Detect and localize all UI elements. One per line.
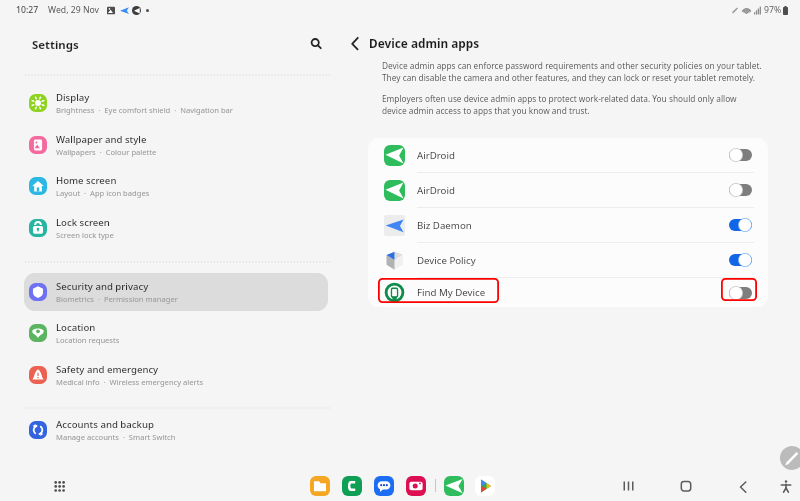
button[interactable]: Wallpaper and style bbox=[24, 126, 328, 164]
staticText: Location requests bbox=[56, 335, 120, 345]
staticText: Lock screen bbox=[56, 216, 110, 229]
staticText: Layout · App icon badges bbox=[56, 188, 150, 198]
button[interactable]: Back bbox=[346, 32, 368, 54]
button[interactable]: play bbox=[475, 476, 495, 496]
button[interactable]: Location bbox=[24, 314, 328, 352]
staticText: Screen lock type bbox=[56, 230, 114, 240]
button[interactable]: Recents bbox=[621, 478, 637, 494]
button[interactable]: Accounts and backup bbox=[24, 411, 328, 449]
button[interactable]: AirDroid bbox=[368, 173, 768, 207]
button[interactable]: Apps bbox=[50, 475, 70, 495]
staticText: Home screen bbox=[56, 174, 117, 187]
button[interactable]: msg bbox=[374, 476, 394, 496]
staticText: Location bbox=[56, 321, 96, 334]
staticText: AirDroid bbox=[417, 149, 455, 162]
staticText: Display bbox=[56, 91, 90, 104]
button[interactable]: Accessibility bbox=[778, 478, 794, 494]
staticText: Settings bbox=[32, 37, 79, 53]
button[interactable]: Security and privacy bbox=[24, 273, 328, 311]
staticText: Biometrics · Permission manager bbox=[56, 294, 178, 304]
button[interactable]: Safety and emergency bbox=[24, 356, 328, 394]
button[interactable]: Device Policy bbox=[368, 243, 768, 277]
staticText: Wallpaper and style bbox=[56, 133, 147, 146]
staticText: Safety and emergency bbox=[56, 363, 159, 376]
button[interactable]: Edit bbox=[780, 446, 800, 470]
button[interactable]: files bbox=[310, 476, 330, 496]
staticText: Find My Device bbox=[417, 286, 486, 299]
button[interactable]: Toggle bbox=[729, 183, 752, 197]
staticText: 97% bbox=[764, 4, 782, 16]
staticText: Wallpapers · Colour palette bbox=[56, 147, 157, 157]
button[interactable]: Biz Daemon bbox=[368, 208, 768, 242]
button[interactable]: Toggle bbox=[729, 286, 752, 300]
button[interactable]: Home bbox=[678, 478, 694, 494]
button[interactable]: Back bbox=[735, 478, 751, 494]
button[interactable]: Toggle bbox=[729, 148, 752, 162]
button[interactable]: Home screen bbox=[24, 167, 328, 205]
button[interactable]: cam bbox=[406, 476, 426, 496]
staticText: Device Policy bbox=[417, 254, 476, 267]
staticText: Device admin apps bbox=[369, 35, 480, 51]
button[interactable]: Lock screen bbox=[24, 209, 328, 247]
button[interactable]: airdroid bbox=[444, 476, 464, 496]
button[interactable]: Find My Device bbox=[368, 278, 768, 307]
staticText: 10:27 bbox=[16, 4, 39, 16]
staticText: Wed, 29 Nov bbox=[48, 4, 100, 16]
button[interactable]: Toggle bbox=[729, 253, 752, 267]
staticText: Biz Daemon bbox=[417, 219, 472, 232]
staticText: Medical info · Wireless emergency alerts bbox=[56, 377, 204, 387]
staticText: Manage accounts · Smart Switch bbox=[56, 432, 176, 442]
button[interactable]: AirDroid bbox=[368, 138, 768, 172]
staticText: Device admin apps can enforce password r… bbox=[382, 60, 762, 83]
staticText: Brightness · Eye comfort shield · Naviga… bbox=[56, 105, 234, 115]
button[interactable]: Display bbox=[24, 84, 328, 122]
button[interactable]: phone bbox=[342, 476, 362, 496]
staticText: AirDroid bbox=[417, 184, 455, 197]
button[interactable]: Search bbox=[303, 31, 327, 55]
staticText: Employers often use device admin apps to… bbox=[382, 93, 737, 116]
staticText: Accounts and backup bbox=[56, 418, 154, 431]
staticText: Security and privacy bbox=[56, 280, 149, 293]
button[interactable]: Toggle bbox=[729, 218, 752, 232]
